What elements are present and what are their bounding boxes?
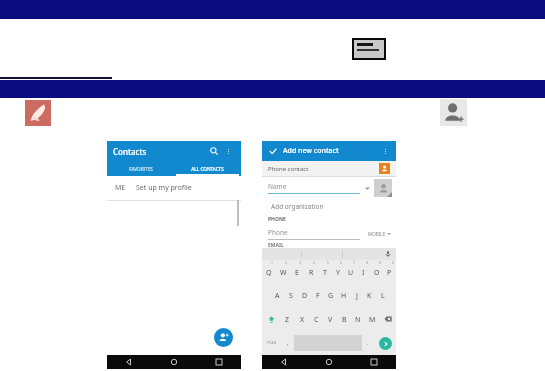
button[interactable]: Note [352,38,386,60]
staticText: H [341,291,347,301]
staticText: MOBILE [368,231,386,237]
button[interactable]: 9 [370,260,383,283]
staticText: PHONE [268,216,286,223]
button[interactable]: K [363,283,376,307]
button[interactable]: Recents [351,355,396,369]
staticText: ME [115,183,126,193]
staticText: EMAIL [268,242,284,248]
staticText: G [328,291,334,301]
button[interactable]: F [311,283,324,307]
staticText: Q [266,268,272,278]
button[interactable]: ME [107,176,241,200]
staticText: 6 [340,260,342,265]
button[interactable]: V [323,307,337,331]
button[interactable]: 6 [331,260,344,283]
staticText: U [348,268,354,278]
button[interactable]: More options [379,145,391,157]
button[interactable]: 5 [318,260,331,283]
button[interactable]: B [337,307,351,331]
button[interactable]: More options [221,144,235,158]
button[interactable]: Expand name fields [363,184,371,192]
button[interactable]: ?123 [262,331,282,355]
button[interactable]: S [284,283,298,307]
staticText: F [316,291,320,301]
staticText: ALL CONTACTS [191,166,224,172]
staticText: , [287,339,289,347]
staticText: M [369,315,376,325]
button[interactable]: , [282,331,294,355]
staticText: I [362,268,365,278]
button[interactable]: 1 [262,260,276,283]
button[interactable]: 2 [276,260,290,283]
button[interactable]: Home [306,355,351,369]
staticText: 9 [379,260,381,265]
button[interactable]: MOBILE [368,231,391,237]
staticText: 5 [327,260,329,265]
staticText: Y [336,268,340,278]
button[interactable]: Add contact [214,328,233,347]
staticText: N [355,315,361,325]
button[interactable]: M [365,307,379,331]
staticText: L [381,291,385,301]
button[interactable]: 7 [344,260,357,283]
staticText: Phone contact [268,165,309,173]
button[interactable]: Add organization [271,199,396,214]
button[interactable]: 0 [383,260,396,283]
staticText: 0 [392,260,394,265]
button[interactable]: Next [379,337,392,350]
button[interactable]: Z [280,307,295,331]
button[interactable]: Add contact [440,99,467,126]
staticText: E [295,268,299,278]
button[interactable]: Search [207,144,221,158]
button[interactable]: Recents [196,355,241,369]
button[interactable]: Phone contact [268,161,390,176]
button[interactable]: D [298,283,311,307]
button[interactable]: Voice input [383,249,393,259]
staticText: A [275,291,280,301]
button[interactable]: X [295,307,309,331]
staticText: V [328,315,333,325]
button[interactable]: 8 [357,260,370,283]
staticText: Phone [268,228,288,237]
staticText: 4 [313,260,315,265]
staticText: J [356,291,358,301]
button[interactable]: A [270,283,284,307]
button[interactable]: ALL CONTACTS [174,161,241,176]
staticText: 2 [285,260,287,265]
staticText: 1 [271,260,273,265]
button[interactable]: L [376,283,389,307]
staticText: D [302,291,308,301]
staticText: R [309,268,314,278]
button[interactable]: 4 [304,260,318,283]
staticText: O [374,268,380,278]
button[interactable]: FAVORITES [107,161,174,176]
staticText: Contacts [113,146,147,157]
staticText: Z [285,315,290,325]
button[interactable]: H [337,283,350,307]
button[interactable]: G [324,283,337,307]
button[interactable]: Home [151,355,196,369]
staticText: 7 [353,260,355,265]
button[interactable]: Shift [262,307,280,331]
staticText: W [280,268,287,278]
staticText: Name [268,182,287,191]
staticText: C [314,315,319,325]
button[interactable]: Save [267,145,279,157]
button[interactable]: J [350,283,363,307]
staticText: 3 [299,260,301,265]
staticText: FAVORITES [129,166,153,172]
button[interactable]: 3 [290,260,304,283]
button[interactable]: Back [262,355,306,369]
staticText: P [387,268,392,278]
staticText: B [342,315,347,325]
button[interactable]: Back [107,355,151,369]
button[interactable]: Add photo [374,179,392,197]
button[interactable]: App icon [25,100,51,126]
button[interactable]: Backspace [379,307,396,331]
staticText: . [367,339,369,347]
button[interactable]: N [351,307,365,331]
staticText: K [367,291,372,301]
button[interactable]: C [309,307,323,331]
